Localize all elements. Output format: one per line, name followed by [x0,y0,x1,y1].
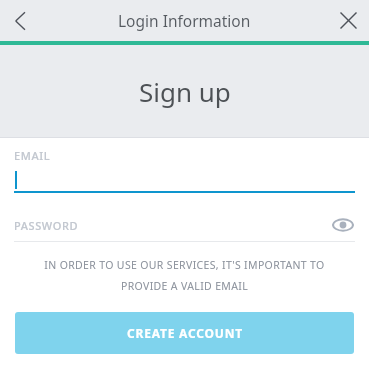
staticText: PASSWORD [14,218,79,233]
staticText: IN ORDER TO USE OUR SERVICES, IT'S IMPOR… [26,258,343,294]
staticText: EMAIL [14,148,51,163]
button[interactable]: PASSWORD [0,209,369,242]
button[interactable]: Back [0,0,41,41]
staticText: Sign up [139,74,231,109]
button[interactable]: CREATE ACCOUNT [15,312,354,354]
staticText: Login Information [118,10,251,31]
button[interactable]: EMAIL [0,148,369,193]
staticText: CREATE ACCOUNT [127,325,243,341]
button[interactable]: Show password [327,209,359,241]
button[interactable]: Close [328,0,369,41]
